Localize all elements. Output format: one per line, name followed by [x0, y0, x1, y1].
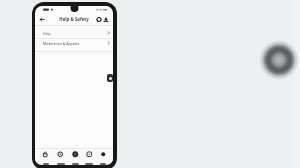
button[interactable] — [68, 148, 82, 164]
button[interactable] — [38, 16, 46, 23]
button[interactable] — [96, 148, 110, 164]
button[interactable]: Help — [35, 25, 113, 38]
button[interactable] — [96, 16, 102, 23]
button[interactable] — [38, 148, 53, 164]
staticText: Help & Safety — [35, 16, 113, 22]
staticText: Help — [43, 31, 51, 36]
staticText: Moderation & Appeals — [43, 41, 80, 46]
button[interactable] — [82, 148, 96, 164]
button[interactable] — [53, 148, 68, 164]
button[interactable] — [103, 16, 109, 23]
button[interactable]: Moderation & Appeals — [35, 39, 113, 51]
button[interactable] — [107, 74, 113, 82]
